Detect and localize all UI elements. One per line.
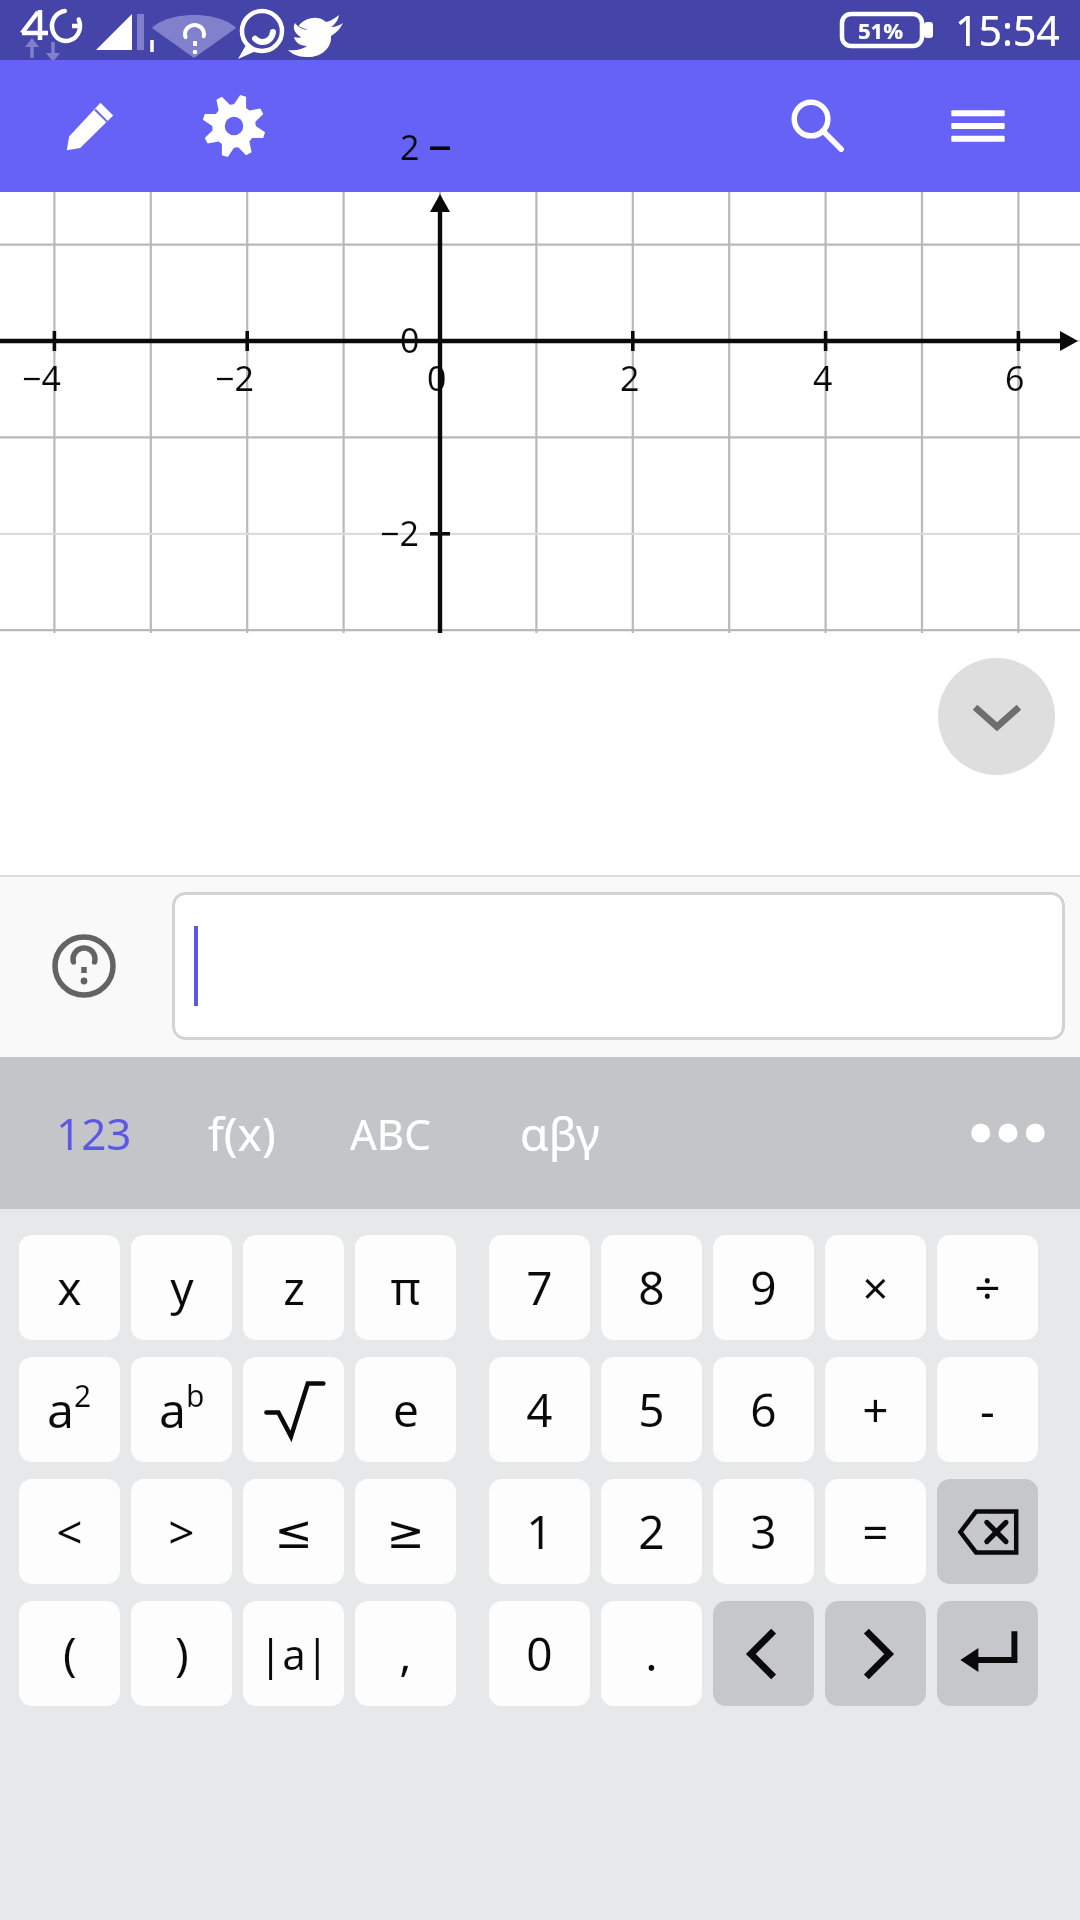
staticText: αβγ xyxy=(520,1102,600,1165)
staticText: 6 xyxy=(750,1378,777,1441)
button[interactable]: 1 xyxy=(489,1479,590,1584)
staticText: 2 xyxy=(638,1500,665,1563)
staticText: a xyxy=(47,1377,74,1442)
staticText: ABC xyxy=(350,1105,431,1162)
staticText: 4 xyxy=(526,1378,553,1441)
button[interactable]: Search xyxy=(770,78,866,174)
button[interactable]: Menu xyxy=(930,78,1026,174)
button[interactable]: 9 xyxy=(713,1235,814,1340)
staticText: y xyxy=(170,1256,194,1319)
button[interactable] xyxy=(172,892,1065,1040)
button[interactable]: Backspace xyxy=(937,1479,1038,1584)
button[interactable]: π xyxy=(355,1235,456,1340)
button[interactable]: Enter xyxy=(937,1601,1038,1706)
button[interactable]: Collapse graph xyxy=(938,658,1055,775)
button[interactable]: e xyxy=(355,1357,456,1462)
staticText: 3 xyxy=(750,1500,777,1563)
button[interactable]: < xyxy=(19,1479,120,1584)
button[interactable]: a xyxy=(131,1357,232,1462)
staticText: × xyxy=(862,1256,889,1319)
button[interactable]: . xyxy=(601,1601,702,1706)
staticText: ≤ xyxy=(274,1505,313,1559)
button[interactable]: ≥ xyxy=(355,1479,456,1584)
button[interactable]: y xyxy=(131,1235,232,1340)
staticText: 9 xyxy=(750,1256,777,1319)
staticText: |a| xyxy=(259,1625,329,1682)
staticText: 51% xyxy=(858,15,904,45)
staticText: f(x) xyxy=(208,1102,276,1165)
staticText: 6 xyxy=(1005,355,1025,401)
staticText: , xyxy=(399,1622,412,1685)
staticText: ) xyxy=(175,1622,189,1685)
button[interactable]: > xyxy=(131,1479,232,1584)
staticText: 1 xyxy=(526,1500,553,1563)
staticText: ÷ xyxy=(974,1256,1001,1319)
button[interactable]: - xyxy=(937,1357,1038,1462)
button[interactable]: ) xyxy=(131,1601,232,1706)
button[interactable]: ( xyxy=(19,1601,120,1706)
staticText: 4 xyxy=(813,355,833,401)
button[interactable]: a xyxy=(19,1357,120,1462)
staticText: ≥ xyxy=(386,1505,425,1559)
staticText: > xyxy=(168,1500,195,1563)
staticText: e xyxy=(393,1378,419,1441)
staticText: 0 xyxy=(427,355,447,401)
button[interactable]: 3 xyxy=(713,1479,814,1584)
button[interactable]: More keyboards xyxy=(956,1081,1060,1185)
button[interactable]: αβγ xyxy=(500,1057,620,1209)
button[interactable]: Move cursor left xyxy=(713,1601,814,1706)
staticText: −2 xyxy=(380,510,419,556)
staticText: 0 xyxy=(400,317,420,363)
staticText: = xyxy=(862,1500,889,1563)
button[interactable]: 2 xyxy=(601,1479,702,1584)
button[interactable]: × xyxy=(825,1235,926,1340)
staticText: + xyxy=(862,1378,889,1441)
staticText: x xyxy=(57,1256,82,1319)
button[interactable]: 7 xyxy=(489,1235,590,1340)
button[interactable]: + xyxy=(825,1357,926,1462)
staticText: ( xyxy=(63,1622,77,1685)
button[interactable]: Square root xyxy=(243,1357,344,1462)
staticText: −2 xyxy=(215,355,254,401)
staticText: 5 xyxy=(638,1378,665,1441)
button[interactable]: Help xyxy=(34,916,134,1016)
staticText: . xyxy=(645,1622,658,1685)
staticText: 0 xyxy=(526,1622,553,1685)
staticText: 8 xyxy=(638,1256,665,1319)
button[interactable]: 5 xyxy=(601,1357,702,1462)
staticText: a xyxy=(159,1377,186,1442)
button[interactable]: 0 xyxy=(489,1601,590,1706)
button[interactable]: , xyxy=(355,1601,456,1706)
button[interactable]: ≤ xyxy=(243,1479,344,1584)
staticText: < xyxy=(56,1500,83,1563)
button[interactable]: 8 xyxy=(601,1235,702,1340)
staticText: 2 xyxy=(74,1375,92,1416)
button[interactable]: 123 xyxy=(34,1057,154,1209)
button[interactable]: = xyxy=(825,1479,926,1584)
staticText: - xyxy=(980,1378,995,1441)
button[interactable]: z xyxy=(243,1235,344,1340)
button[interactable]: ABC xyxy=(330,1057,450,1209)
staticText: b xyxy=(186,1375,205,1416)
staticText: 2 xyxy=(400,124,420,170)
staticText: 7 xyxy=(526,1256,553,1319)
button[interactable]: 6 xyxy=(713,1357,814,1462)
staticText: π xyxy=(390,1256,421,1319)
staticText: z xyxy=(283,1256,305,1319)
staticText: 2 xyxy=(620,355,640,401)
button[interactable]: 4 xyxy=(489,1357,590,1462)
button[interactable]: ÷ xyxy=(937,1235,1038,1340)
button[interactable]: Edit xyxy=(42,78,138,174)
button[interactable]: Move cursor right xyxy=(825,1601,926,1706)
button[interactable]: |a| xyxy=(243,1601,344,1706)
staticText: −4 xyxy=(22,355,61,401)
button[interactable]: Settings xyxy=(186,78,282,174)
button[interactable]: f(x) xyxy=(182,1057,302,1209)
staticText: 123 xyxy=(56,1103,132,1163)
button[interactable]: x xyxy=(19,1235,120,1340)
staticText: 15:54 xyxy=(955,2,1060,58)
